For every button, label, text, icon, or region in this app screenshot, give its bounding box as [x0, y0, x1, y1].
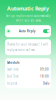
button[interactable]: Start Time [7, 67, 49, 71]
staticText: Thanks for your message! I will [7, 43, 48, 46]
staticText: reply as soon as I can. [7, 48, 36, 52]
button[interactable]: Auto Reply [5, 25, 51, 37]
staticText: Repeat [7, 82, 17, 85]
button[interactable]: End Time [7, 74, 49, 78]
button[interactable]: Repeat [7, 81, 49, 85]
staticText: Daily [43, 82, 49, 85]
button[interactable]: Thanks for your message! I will [5, 39, 51, 55]
staticText: Schedule [7, 61, 20, 64]
staticText: 18:00 [40, 75, 49, 78]
staticText: Automatic Reply [7, 5, 49, 12]
staticText: Start Time [7, 68, 19, 71]
staticText: End Time [7, 75, 19, 78]
staticText: Auto Reply [19, 29, 35, 33]
staticText: Set up replies sent automatically [6, 14, 50, 18]
staticText: when you are away [15, 19, 40, 22]
staticText: 09:00 [40, 68, 49, 71]
